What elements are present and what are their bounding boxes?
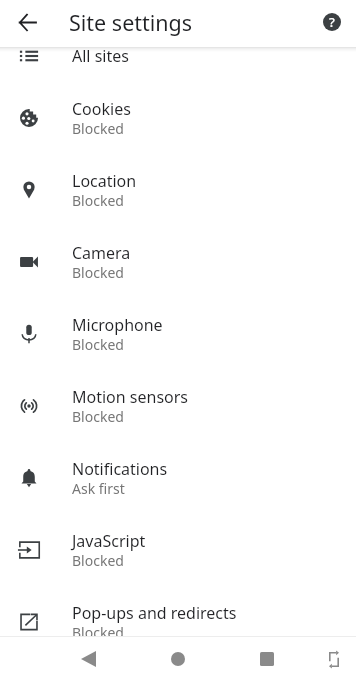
staticText: Blocked xyxy=(72,191,124,210)
staticText: Notifications xyxy=(72,458,168,480)
staticText: Blocked xyxy=(72,623,124,636)
button[interactable]: Pop-ups and redirects xyxy=(0,586,356,636)
button[interactable]: JavaScript xyxy=(0,514,356,586)
button[interactable]: Back xyxy=(68,639,108,679)
button[interactable]: Microphone xyxy=(0,298,356,370)
staticText: Motion sensors xyxy=(72,386,189,408)
button[interactable]: Camera xyxy=(0,226,356,298)
staticText: Site settings xyxy=(69,8,193,37)
staticText: Camera xyxy=(72,242,131,264)
staticText: JavaScript xyxy=(72,530,146,552)
button[interactable]: Switch keyboard xyxy=(314,639,354,679)
staticText: Blocked xyxy=(72,335,124,354)
staticText: ? xyxy=(329,13,335,31)
staticText: Blocked xyxy=(72,119,124,138)
staticText: Blocked xyxy=(72,263,124,282)
staticText: Ask first xyxy=(72,479,125,498)
button[interactable]: Back xyxy=(11,6,43,38)
button[interactable]: Notifications xyxy=(0,442,356,514)
staticText: Cookies xyxy=(72,98,131,120)
button[interactable]: Home xyxy=(158,639,198,679)
button[interactable]: All sites xyxy=(0,47,356,82)
staticText: Blocked xyxy=(72,407,124,426)
button[interactable]: Help xyxy=(316,6,348,38)
button[interactable]: Motion sensors xyxy=(0,370,356,442)
staticText: Blocked xyxy=(72,551,124,570)
staticText: Location xyxy=(72,170,137,192)
staticText: Microphone xyxy=(72,314,163,336)
button[interactable]: Location xyxy=(0,154,356,226)
staticText: All sites xyxy=(72,47,129,67)
button[interactable]: Recent apps xyxy=(247,639,287,679)
staticText: Pop-ups and redirects xyxy=(72,602,237,624)
button[interactable]: Cookies xyxy=(0,82,356,154)
